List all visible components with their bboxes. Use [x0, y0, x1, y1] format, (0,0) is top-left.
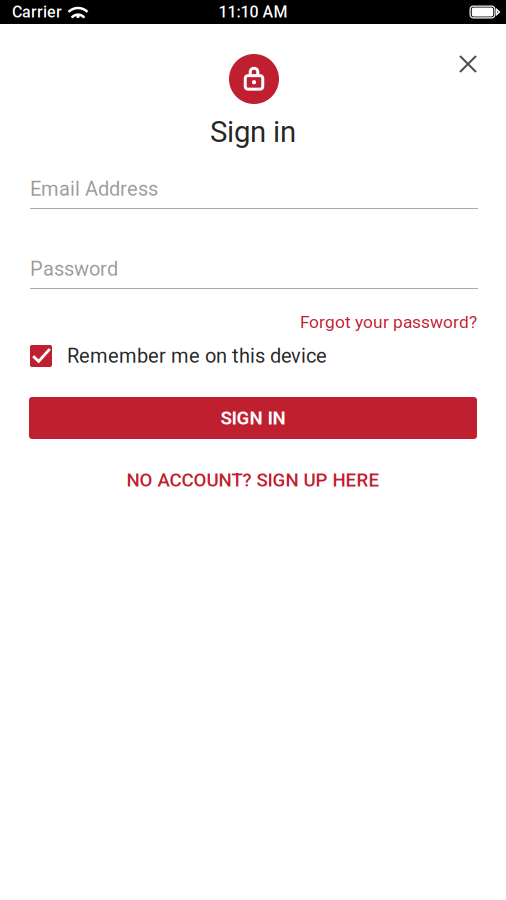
staticText: NO ACCOUNT? SIGN UP HERE [126, 469, 379, 491]
staticText: Email Address [30, 177, 158, 201]
staticText: Sign in [210, 115, 296, 149]
button[interactable]: Remember me on this device [30, 344, 327, 368]
button[interactable]: SIGN IN [29, 397, 477, 439]
button[interactable]: Close [445, 41, 491, 87]
staticText: Forgot your password? [300, 312, 477, 332]
staticText: SIGN IN [220, 407, 285, 429]
staticText: Remember me on this device [67, 344, 327, 368]
staticText: Password [30, 257, 118, 281]
button[interactable]: Forgot your password? [300, 308, 477, 336]
staticText: Carrier [12, 3, 62, 21]
button[interactable]: NO ACCOUNT? SIGN UP HERE [126, 463, 379, 497]
staticText: 11:10 AM [218, 3, 287, 21]
